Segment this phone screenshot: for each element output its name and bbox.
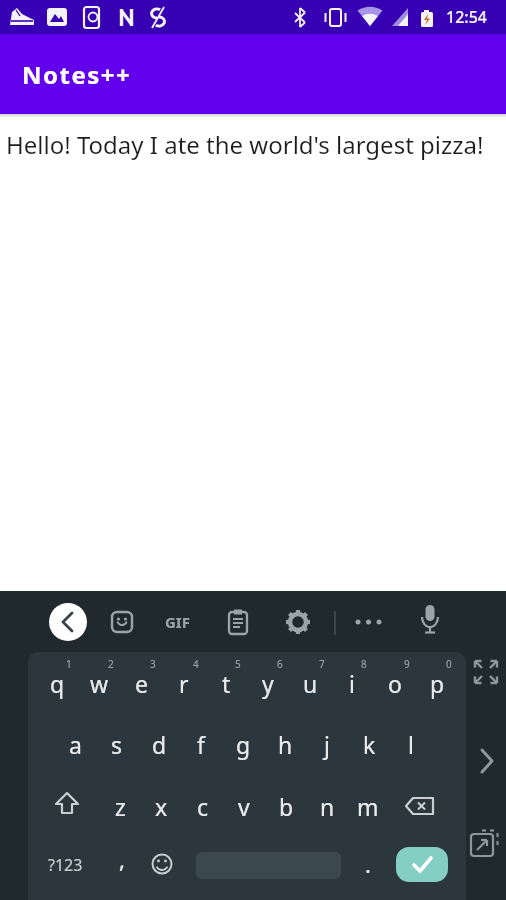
button[interactable]: t — [204, 659, 248, 707]
button[interactable] — [225, 608, 252, 636]
staticText: d — [152, 729, 167, 760]
button[interactable]: ?123 — [34, 843, 96, 887]
button[interactable]: y — [246, 659, 290, 707]
staticText: m — [357, 791, 379, 822]
button[interactable]: s — [95, 720, 139, 768]
staticText: e — [135, 668, 148, 699]
staticText: t — [222, 668, 231, 699]
button[interactable]: k — [347, 720, 391, 768]
button[interactable]: x — [139, 782, 183, 830]
button[interactable]: c — [181, 782, 225, 830]
button[interactable]: i — [330, 659, 374, 707]
button[interactable]: q — [35, 659, 79, 707]
staticText: k — [363, 729, 376, 760]
staticText: , — [119, 844, 125, 874]
button[interactable] — [352, 606, 386, 638]
staticText: 7 — [319, 657, 325, 671]
staticText: g — [236, 729, 251, 760]
staticText: f — [197, 729, 205, 760]
button[interactable]: g — [221, 720, 265, 768]
button[interactable]: h — [263, 720, 307, 768]
button[interactable]: b — [264, 782, 308, 830]
button[interactable]: e — [119, 659, 163, 707]
button[interactable] — [141, 843, 183, 885]
button[interactable]: v — [222, 782, 266, 830]
button[interactable]: m — [346, 782, 390, 830]
staticText: 2 — [108, 657, 114, 671]
staticText: p — [430, 668, 445, 699]
staticText: 6 — [277, 657, 283, 671]
staticText: z — [115, 791, 126, 822]
staticText: 5 — [235, 657, 241, 671]
button[interactable] — [471, 657, 501, 687]
button[interactable] — [49, 603, 87, 641]
staticText: r — [179, 668, 189, 699]
staticText: 1 — [66, 657, 72, 671]
staticText: n — [320, 791, 335, 822]
staticText: l — [408, 729, 414, 760]
button[interactable]: w — [77, 659, 121, 707]
button[interactable]: n — [305, 782, 349, 830]
button[interactable] — [468, 828, 500, 860]
button[interactable]: f — [179, 720, 223, 768]
button[interactable]: d — [137, 720, 181, 768]
button[interactable]: r — [162, 659, 206, 707]
button[interactable]: p — [415, 659, 459, 707]
button[interactable]: a — [53, 720, 97, 768]
staticText: GIF — [165, 612, 190, 632]
staticText: 12:54 — [446, 6, 487, 28]
button[interactable]: Notes++ — [0, 34, 506, 114]
button[interactable] — [396, 847, 448, 882]
staticText: j — [324, 729, 330, 760]
staticText: ?123 — [48, 854, 83, 876]
button[interactable] — [399, 785, 441, 827]
staticText: c — [197, 791, 209, 822]
button[interactable]: GIF — [155, 606, 199, 638]
staticText: Hello! Today I ate the world's largest p… — [6, 128, 484, 161]
staticText: x — [155, 791, 168, 822]
staticText: . — [365, 849, 371, 879]
staticText: 8 — [361, 657, 367, 671]
staticText: v — [238, 791, 250, 822]
staticText: 4 — [193, 657, 199, 671]
staticText: b — [279, 791, 294, 822]
button[interactable]: u — [288, 659, 332, 707]
button[interactable]: l — [389, 720, 433, 768]
staticText: u — [303, 668, 318, 699]
button[interactable] — [415, 601, 445, 643]
button[interactable]: Hello! Today I ate the world's largest p… — [6, 128, 484, 161]
staticText: 9 — [404, 657, 410, 671]
button[interactable] — [46, 785, 88, 827]
button[interactable]: o — [373, 659, 417, 707]
staticText: 0 — [446, 657, 452, 671]
button[interactable]: , — [105, 837, 139, 881]
button[interactable]: . — [351, 842, 385, 886]
staticText: h — [278, 729, 293, 760]
staticText: 3 — [150, 657, 156, 671]
button[interactable] — [109, 609, 135, 635]
staticText: a — [69, 729, 82, 760]
staticText: w — [90, 668, 109, 699]
button[interactable] — [470, 741, 502, 781]
staticText: i — [349, 668, 355, 699]
staticText: o — [388, 668, 402, 699]
button[interactable]: j — [305, 720, 349, 768]
staticText: q — [50, 668, 65, 699]
staticText: s — [111, 729, 123, 760]
staticText: y — [262, 668, 274, 699]
button[interactable] — [284, 608, 312, 636]
staticText: Notes++ — [22, 58, 132, 91]
button[interactable]: z — [98, 782, 142, 830]
